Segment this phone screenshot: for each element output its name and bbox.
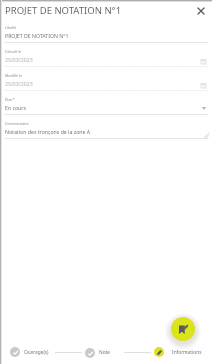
staticText: PROJET DE NOTATION N°1 [5,4,122,17]
staticText: Modifié le [5,73,23,78]
button[interactable]: Informations step [154,347,164,357]
button[interactable]: Note step [85,348,95,358]
staticText: Note [99,349,110,356]
staticText: Notation des tronçons de la zone A [5,128,91,135]
staticText: Libellé [5,25,17,30]
button[interactable]: Modifié le [0,72,212,96]
staticText: En cours [5,104,26,111]
staticText: 25/03/2023 [5,56,33,63]
staticText: PROJET DE NOTATION N°1 [5,32,69,39]
button[interactable]: État * [0,96,212,120]
button[interactable]: Commentaire [0,120,212,144]
button[interactable]: Libellé [0,24,212,48]
staticText: Calculé le [5,49,22,54]
staticText: État * [5,97,15,102]
button[interactable]: Ouvrage(s) step [10,347,20,357]
staticText: Ouvrage(s) [24,349,49,356]
staticText: Commentaire [5,121,29,126]
button[interactable]: Save [171,317,195,341]
button[interactable]: Calculé le [0,48,212,72]
staticText: Informations [172,349,202,356]
staticText: 25/03/2023 [5,80,33,87]
button[interactable]: Close [193,3,209,19]
